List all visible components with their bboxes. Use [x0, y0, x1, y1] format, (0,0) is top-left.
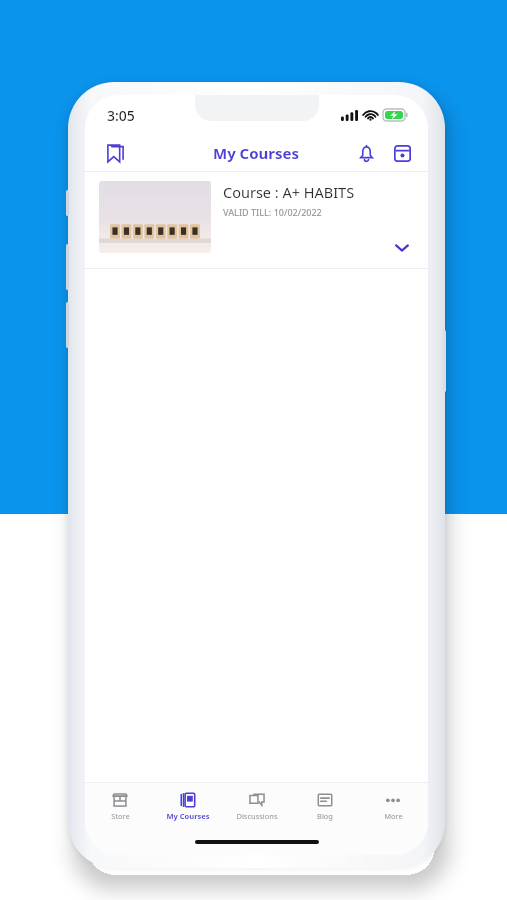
staticText: Discussions	[236, 811, 278, 821]
staticText: My Courses	[213, 143, 300, 163]
staticText: More	[384, 811, 403, 821]
button[interactable]: Bookmarks	[95, 135, 135, 171]
button[interactable]: Blog	[292, 783, 358, 829]
staticText: Store	[111, 811, 130, 821]
button[interactable]: Notifications	[348, 135, 384, 171]
staticText: Course : A+ HABITS	[223, 182, 355, 202]
button[interactable]: Discussions	[224, 783, 290, 829]
button[interactable]: Store	[87, 783, 153, 829]
staticText: My Courses	[166, 811, 210, 821]
staticText: VALID TILL: 10/02/2022	[223, 206, 322, 218]
staticText: Blog	[317, 811, 333, 821]
button[interactable]: My Courses	[155, 783, 221, 829]
button[interactable]: Expand course	[388, 234, 416, 262]
staticText: 3:05	[107, 106, 135, 125]
button[interactable]: Course : A+ HABITS	[85, 172, 428, 268]
button[interactable]: More	[360, 783, 426, 829]
button[interactable]: Downloads	[384, 135, 420, 171]
